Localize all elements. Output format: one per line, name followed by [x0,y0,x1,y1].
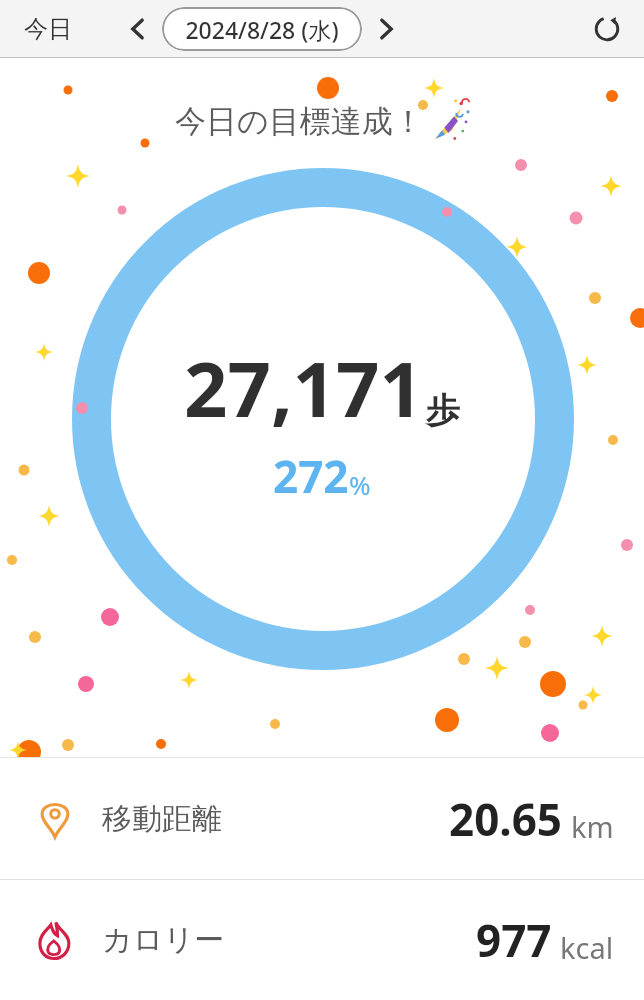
staticText: 272 [273,446,349,506]
button[interactable]: Refresh [584,6,630,52]
staticText: kcal [560,928,614,967]
staticText: 移動距離 [102,800,222,838]
button[interactable]: Next day [366,9,406,49]
staticText: 今日 [24,14,72,44]
button[interactable]: Previous day [118,9,158,49]
staticText: km [571,807,614,846]
staticText: 今日の目標達成！ [175,102,424,141]
staticText: 20.65 [449,789,563,849]
button[interactable]: カロリー [0,880,644,1000]
staticText: % [349,467,371,502]
button[interactable]: 移動距離 [0,758,644,879]
button[interactable]: 2024/8/28 (水) [162,7,362,51]
button[interactable]: 今日 [14,8,82,50]
staticText: カロリー [102,921,225,959]
staticText: 歩 [426,389,460,432]
staticText: 2024/8/28 (水) [185,14,339,45]
staticText: 27,171 [184,336,424,440]
staticText: 977 [476,910,552,970]
